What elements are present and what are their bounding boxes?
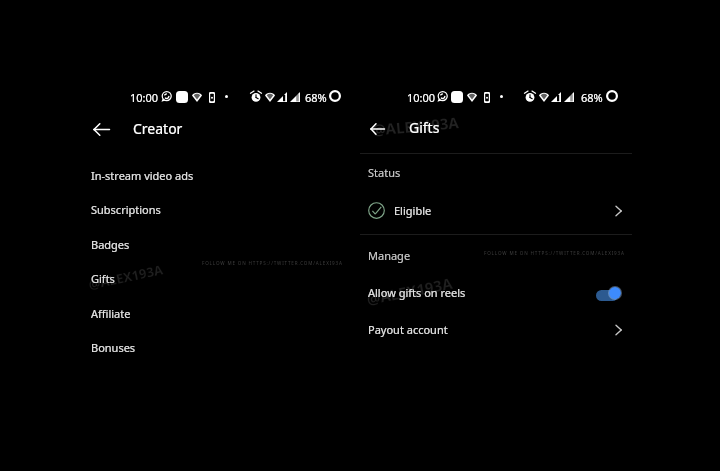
button[interactable]: Gifts	[85, 265, 355, 291]
staticText: Badges	[91, 237, 130, 252]
staticText: Payout account	[368, 322, 448, 337]
staticText: FOLLOW ME ON HTTPS://TWITTER.COM/ALEXI93…	[202, 260, 343, 266]
button[interactable]: Creator	[133, 119, 183, 139]
staticText: Subscriptions	[91, 202, 161, 217]
staticText: 10:00	[130, 90, 159, 105]
button[interactable]: Subscriptions	[85, 196, 355, 222]
staticText: 10:00	[407, 90, 436, 105]
button[interactable]: Allow gifts on reels	[360, 281, 632, 304]
staticText: Gifts	[91, 271, 115, 286]
staticText: @ALEX193A	[371, 112, 460, 140]
staticText: Gifts	[409, 118, 440, 137]
button[interactable]: Eligible	[360, 198, 632, 223]
staticText: Status	[368, 165, 401, 180]
staticText: FOLLOW ME ON HTTPS://TWITTER.COM/ALEXI93…	[484, 250, 625, 256]
button[interactable]: Affiliate	[85, 300, 355, 326]
staticText: Affiliate	[91, 306, 131, 321]
staticText: Bonuses	[91, 340, 136, 355]
button[interactable]: Back	[88, 116, 114, 142]
staticText: @ALEX193A	[365, 273, 454, 309]
button[interactable]: Back	[364, 116, 390, 142]
button[interactable]: Gifts	[409, 118, 440, 138]
staticText: Manage	[368, 248, 411, 263]
staticText: Allow gifts on reels	[368, 285, 466, 300]
staticText: @ALEX193A	[87, 260, 165, 294]
staticText: Eligible	[394, 203, 432, 218]
staticText: 68%	[305, 90, 327, 105]
button[interactable]: Badges	[85, 231, 355, 257]
staticText: 68%	[581, 90, 603, 105]
staticText: In-stream video ads	[91, 168, 194, 183]
button[interactable]: Allow gifts on reels toggle	[596, 285, 624, 301]
staticText: Creator	[133, 119, 183, 138]
button[interactable]: Bonuses	[85, 334, 355, 360]
button[interactable]: In-stream video ads	[85, 162, 355, 188]
button[interactable]: Payout account	[360, 318, 632, 341]
